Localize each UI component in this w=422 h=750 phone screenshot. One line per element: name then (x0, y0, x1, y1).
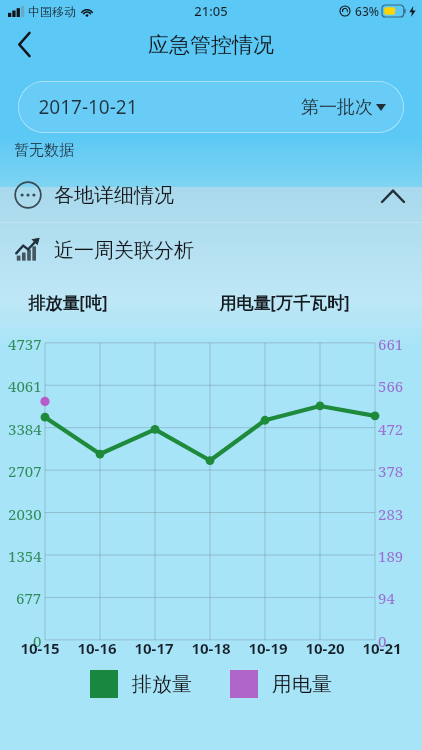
staticText: 暂无数据 (14, 141, 74, 160)
staticText: 用电量 (272, 672, 332, 697)
staticText: 677 (16, 588, 42, 608)
staticText: 566 (378, 376, 404, 396)
staticText: 2030 (8, 504, 42, 524)
staticText: 应急管控情况 (148, 32, 274, 58)
staticText: 378 (378, 461, 404, 481)
staticText: 10-16 (77, 638, 117, 658)
staticText: 63% (355, 3, 379, 19)
staticText: 0 (378, 631, 387, 651)
staticText: 中国移动 (28, 4, 76, 19)
button[interactable]: 2017-10-21 (18, 81, 404, 133)
staticText: 4061 (8, 376, 42, 396)
staticText: 10-21 (362, 638, 402, 658)
staticText: 10-20 (305, 638, 345, 658)
staticText: 2707 (8, 461, 42, 481)
staticText: 1354 (8, 546, 42, 566)
staticText: 10-18 (191, 638, 231, 658)
staticText: 10-19 (248, 638, 288, 658)
button[interactable]: 各地详细情况 (0, 168, 422, 222)
staticText: 排放量 (132, 672, 192, 697)
staticText: 3384 (8, 419, 42, 439)
staticText: 0 (33, 631, 42, 651)
staticText: 用电量[万千瓦时] (219, 291, 350, 314)
button[interactable]: Back (0, 22, 48, 67)
staticText: 排放量[吨] (28, 291, 108, 314)
staticText: 189 (378, 546, 404, 566)
staticText: 283 (378, 504, 404, 524)
staticText: 近一周关联分析 (54, 238, 194, 263)
staticText: 10-15 (20, 638, 60, 658)
staticText: 各地详细情况 (54, 183, 174, 208)
staticText: 10-17 (134, 638, 174, 658)
staticText: 94 (378, 588, 395, 608)
staticText: 472 (378, 419, 404, 439)
staticText: 661 (378, 334, 404, 354)
staticText: 21:05 (194, 2, 228, 20)
staticText: 4737 (8, 334, 42, 354)
staticText: 2017-10-21 (38, 94, 138, 120)
staticText: 第一批次 (301, 96, 373, 119)
button[interactable]: 近一周关联分析 (0, 223, 422, 277)
